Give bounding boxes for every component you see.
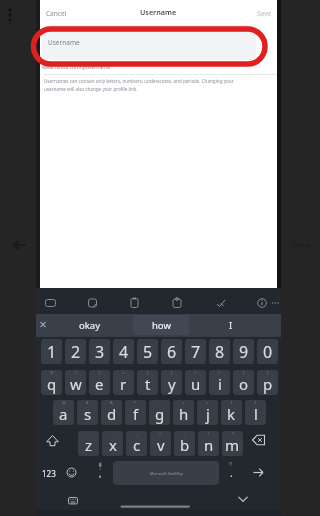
button[interactable]: < (185, 370, 206, 395)
staticText: username will also change your profile l… (44, 86, 138, 92)
button[interactable]: } (257, 370, 278, 395)
staticText: q (47, 374, 57, 394)
staticText: ; (184, 431, 186, 436)
staticText: ~ (87, 431, 90, 436)
button[interactable]: 8 (209, 339, 230, 364)
staticText: 7 (191, 341, 201, 363)
staticText: Save (257, 9, 272, 18)
staticText: 6 (167, 341, 177, 363)
button[interactable]: Save (255, 7, 274, 20)
button[interactable]: 0 (257, 339, 278, 364)
staticText: Microsoft SwiftKey (150, 471, 183, 476)
button[interactable]: Username (42, 25, 256, 60)
staticText: @ (62, 400, 66, 405)
staticText: Cancel (46, 9, 67, 18)
button[interactable]: ? (222, 431, 243, 456)
button[interactable]: = (113, 370, 134, 395)
button[interactable]: 4 (113, 339, 134, 364)
staticText: a (59, 404, 68, 424)
staticText: | (98, 370, 101, 375)
button[interactable]: > (209, 370, 230, 395)
staticText: > (218, 370, 221, 375)
staticText: Usernames can contain only letters, numb… (44, 78, 234, 84)
button[interactable]: & (101, 400, 122, 425)
button[interactable]: \ (65, 370, 86, 395)
staticText: ) (255, 400, 257, 405)
button[interactable]: ! (198, 431, 219, 456)
button[interactable]: @ (53, 400, 74, 425)
button[interactable]: { (233, 370, 254, 395)
button[interactable]: + (173, 400, 194, 425)
staticText: ( (231, 400, 233, 405)
button[interactable]: = (197, 400, 218, 425)
staticText: r (120, 374, 127, 394)
button[interactable]: # (77, 400, 98, 425)
staticText: v (157, 435, 165, 455)
staticText: < (194, 370, 197, 375)
button[interactable]: 2 (65, 339, 86, 364)
button[interactable]: ) (245, 400, 266, 425)
staticText: l (254, 404, 258, 424)
button[interactable]: 9 (233, 339, 254, 364)
staticText: } (267, 370, 269, 375)
staticText: o (239, 374, 249, 394)
button[interactable]: ] (161, 370, 182, 395)
button[interactable]: _ (126, 431, 147, 456)
button[interactable]: * (125, 400, 146, 425)
button[interactable]: Microsoft SwiftKey (113, 461, 219, 485)
staticText: n (204, 435, 214, 455)
staticText: = (122, 370, 125, 375)
button[interactable]: ( (221, 400, 242, 425)
staticText: ^ (159, 431, 162, 436)
staticText: h (179, 404, 189, 424)
button[interactable]: ~ (78, 431, 99, 456)
staticText: ` (112, 431, 114, 436)
staticText: % (50, 370, 54, 375)
staticText: & (110, 400, 113, 405)
staticText: x (109, 435, 117, 455)
staticText: - (159, 400, 161, 405)
button[interactable]: 3 (89, 339, 110, 364)
button[interactable]: 1 (41, 339, 62, 364)
button[interactable]: Cancel (44, 7, 69, 20)
button[interactable]: 5 (137, 339, 158, 364)
staticText: www.tiktok.com/@username (42, 64, 110, 71)
staticText: [ (147, 370, 149, 375)
staticText: p (263, 374, 273, 394)
staticText: t (145, 374, 151, 394)
staticText: { (243, 370, 245, 375)
button[interactable]: ` (102, 431, 123, 456)
staticText: 123 (42, 468, 56, 479)
staticText: 5 (143, 341, 153, 363)
staticText: m (225, 435, 240, 455)
staticText: I (229, 319, 233, 332)
staticText: # (86, 400, 89, 405)
staticText: + (182, 400, 185, 405)
button[interactable]: 7 (185, 339, 206, 364)
button[interactable]: ^ (150, 431, 171, 456)
staticText: 3 (95, 341, 105, 363)
staticText: 8 (215, 341, 225, 363)
staticText: 9 (239, 341, 249, 363)
staticText: Username (48, 38, 80, 47)
staticText: Username (140, 7, 177, 17)
button[interactable]: [ (137, 370, 158, 395)
staticText: g (155, 404, 165, 424)
button[interactable]: | (89, 370, 110, 395)
staticText: 4 (119, 341, 129, 363)
staticText: 1 (47, 341, 57, 363)
staticText: e (95, 374, 104, 394)
staticText: y (168, 374, 176, 394)
staticText: . (230, 466, 233, 480)
staticText: 0 (263, 341, 273, 363)
staticText: b (180, 435, 190, 455)
button[interactable]: ; (174, 431, 195, 456)
button[interactable]: - (149, 400, 170, 425)
staticText: _ (136, 431, 138, 436)
staticText: k (227, 404, 236, 424)
button[interactable]: 6 (161, 339, 182, 364)
button[interactable]: % (41, 370, 62, 395)
staticText: ! (208, 431, 210, 436)
staticText: okay (79, 319, 100, 332)
